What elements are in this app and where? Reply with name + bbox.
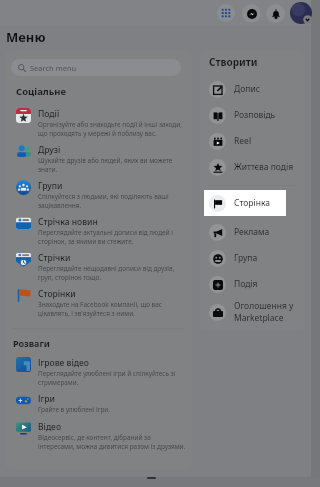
- staticText: Грайте в улюблені ігри.: [38, 405, 110, 414]
- staticText: Знаходьте на Facebook компанії, що вас ц…: [38, 300, 188, 317]
- staticText: Події: [38, 108, 60, 120]
- button[interactable]: Стрічки: [5, 249, 192, 285]
- button[interactable]: Сторінки: [5, 285, 192, 321]
- staticText: Спілкуйтеся з людьми, які поділяють ваші…: [38, 192, 188, 209]
- button[interactable]: Подія: [200, 271, 304, 297]
- button[interactable]: Notifications: [266, 4, 285, 23]
- staticText: Допис: [234, 83, 260, 95]
- button[interactable]: Група: [200, 245, 304, 271]
- button[interactable]: Події: [5, 105, 192, 141]
- staticText: Подія: [234, 278, 258, 290]
- staticText: Search menu: [30, 63, 77, 73]
- staticText: Розповідь: [234, 109, 276, 121]
- button[interactable]: Друзі: [5, 141, 192, 177]
- staticText: Переглядайте нещодавні дописи від друзів…: [38, 264, 188, 281]
- button[interactable]: Search menu: [11, 59, 181, 76]
- staticText: Marketplace: [234, 312, 284, 324]
- staticText: Життєва подія: [234, 161, 294, 173]
- button[interactable]: Ігри: [5, 390, 192, 418]
- button[interactable]: Ігрове відео: [5, 354, 192, 390]
- button[interactable]: Стрічка новин: [5, 213, 192, 249]
- button[interactable]: Допис: [200, 76, 304, 102]
- staticText: Група: [234, 252, 258, 264]
- staticText: Друзі: [38, 144, 61, 156]
- button[interactable]: Apps: [217, 4, 235, 22]
- button[interactable]: Reel: [200, 128, 304, 154]
- button[interactable]: Реклама: [200, 219, 304, 245]
- staticText: Реклама: [234, 226, 270, 238]
- staticText: Оголошення у: [234, 300, 294, 312]
- staticText: Меню: [6, 28, 46, 46]
- staticText: Ігрове відео: [38, 357, 89, 369]
- staticText: Переглядайте улюблені ігри й спілкуйтесь…: [38, 369, 188, 386]
- staticText: Відео: [38, 421, 62, 433]
- staticText: Розваги: [13, 337, 50, 349]
- staticText: Організуйте або знаходьте події й інші з…: [38, 120, 188, 137]
- staticText: Створити: [209, 55, 258, 69]
- button[interactable]: Оголошення у: [200, 297, 304, 327]
- staticText: Групи: [38, 180, 63, 192]
- button[interactable]: Групи: [5, 177, 192, 213]
- staticText: Шукайте друзів або людей, яких ви можете…: [38, 156, 188, 173]
- staticText: Ігри: [38, 393, 55, 405]
- staticText: Стрічка новин: [38, 216, 98, 228]
- staticText: Сторінка: [234, 197, 271, 209]
- button[interactable]: Розповідь: [200, 102, 304, 128]
- staticText: Відеосервіс, де контент, дібраний за інт…: [38, 433, 188, 450]
- staticText: Переглядайте актуальні дописи від людей …: [38, 228, 188, 245]
- button[interactable]: Messenger: [242, 4, 261, 23]
- staticText: Соціальне: [16, 85, 67, 98]
- staticText: Сторінки: [38, 288, 76, 300]
- button[interactable]: Життєва подія: [200, 154, 304, 180]
- staticText: Reel: [234, 135, 252, 147]
- staticText: Стрічки: [38, 252, 71, 264]
- button[interactable]: Відео: [5, 418, 192, 454]
- button[interactable]: Сторінка: [204, 190, 286, 216]
- button[interactable]: Profile: [290, 2, 312, 24]
